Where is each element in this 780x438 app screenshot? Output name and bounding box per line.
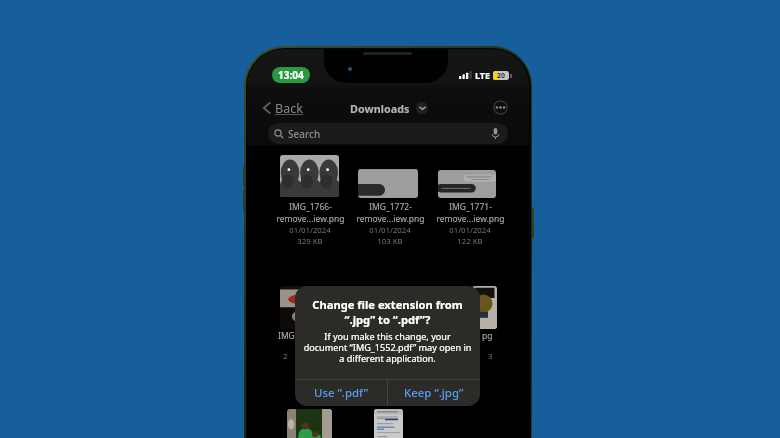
staticText: remove...iew.png [276, 213, 345, 225]
staticText: 01/01/2024 [289, 225, 331, 236]
button[interactable] [287, 409, 332, 438]
button[interactable]: Keep “.jpg” [388, 379, 480, 406]
staticText: remove...iew.png [436, 213, 505, 225]
staticText: If you make this change, your document “… [295, 330, 480, 365]
button[interactable]: Search [268, 123, 508, 144]
staticText: LTE [475, 69, 491, 81]
staticText: 3 [488, 351, 493, 362]
button[interactable]: Use “.pdf” [295, 379, 387, 406]
staticText: IMG_1771- [449, 201, 492, 213]
button[interactable]: IMG_1766- [274, 153, 346, 248]
staticText: IMG_1766- [289, 201, 332, 213]
staticText: 13:04 [278, 68, 304, 82]
staticText: Use “.pdf” [314, 385, 369, 401]
button[interactable]: IMG_1772- [354, 167, 426, 248]
staticText: Back [275, 100, 303, 117]
button[interactable]: More options [493, 100, 508, 115]
staticText: 20 [497, 71, 506, 80]
staticText: Change file extension from “.jpg” to “.p… [295, 297, 480, 327]
staticText: 01/01/2024 [369, 225, 411, 236]
staticText: 103 KB [377, 236, 403, 247]
staticText: Search [288, 127, 321, 141]
staticText: 122 KB [457, 236, 483, 247]
button[interactable] [374, 409, 403, 438]
button[interactable] [280, 286, 326, 329]
staticText: 01/01/2024 [449, 225, 491, 236]
staticText: pg [482, 330, 493, 342]
staticText: IMG [278, 330, 295, 342]
button[interactable]: IMG_1771- [434, 168, 506, 248]
button[interactable] [472, 286, 497, 329]
staticText: Downloads [350, 101, 410, 116]
staticText: 329 KB [297, 236, 323, 247]
staticText: Keep “.jpg” [404, 385, 464, 401]
staticText: 2 [283, 351, 288, 362]
button[interactable]: Back [263, 99, 303, 117]
button[interactable]: Change folder [416, 102, 428, 114]
staticText: IMG_1772- [369, 201, 412, 213]
staticText: remove...iew.png [356, 213, 425, 225]
